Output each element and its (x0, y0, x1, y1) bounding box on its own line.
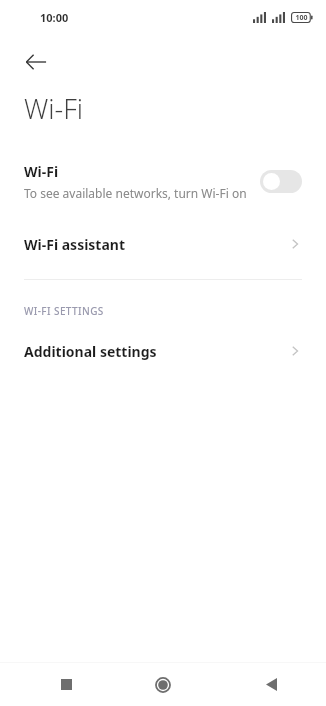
staticText: Wi-Fi assistant (24, 235, 288, 254)
button[interactable]: Wi-Fi (0, 155, 326, 207)
staticText: 10:00 (40, 10, 69, 25)
button[interactable]: Back (14, 40, 58, 84)
staticText: Wi-Fi (24, 162, 59, 181)
button[interactable]: Home (108, 663, 217, 706)
staticText: 100 (295, 13, 308, 23)
staticText: Additional settings (24, 342, 288, 361)
staticText: WI-FI SETTINGS (24, 304, 104, 318)
staticText: To see available networks, turn Wi-Fi on (24, 185, 247, 201)
button[interactable]: Wi-Fi assistant (0, 229, 326, 259)
button[interactable]: Additional settings (0, 336, 326, 366)
button[interactable]: Back (217, 663, 326, 706)
staticText: Wi-Fi (24, 90, 84, 127)
button[interactable]: Recents (0, 663, 108, 706)
button[interactable]: Wi-Fi toggle (260, 170, 302, 193)
